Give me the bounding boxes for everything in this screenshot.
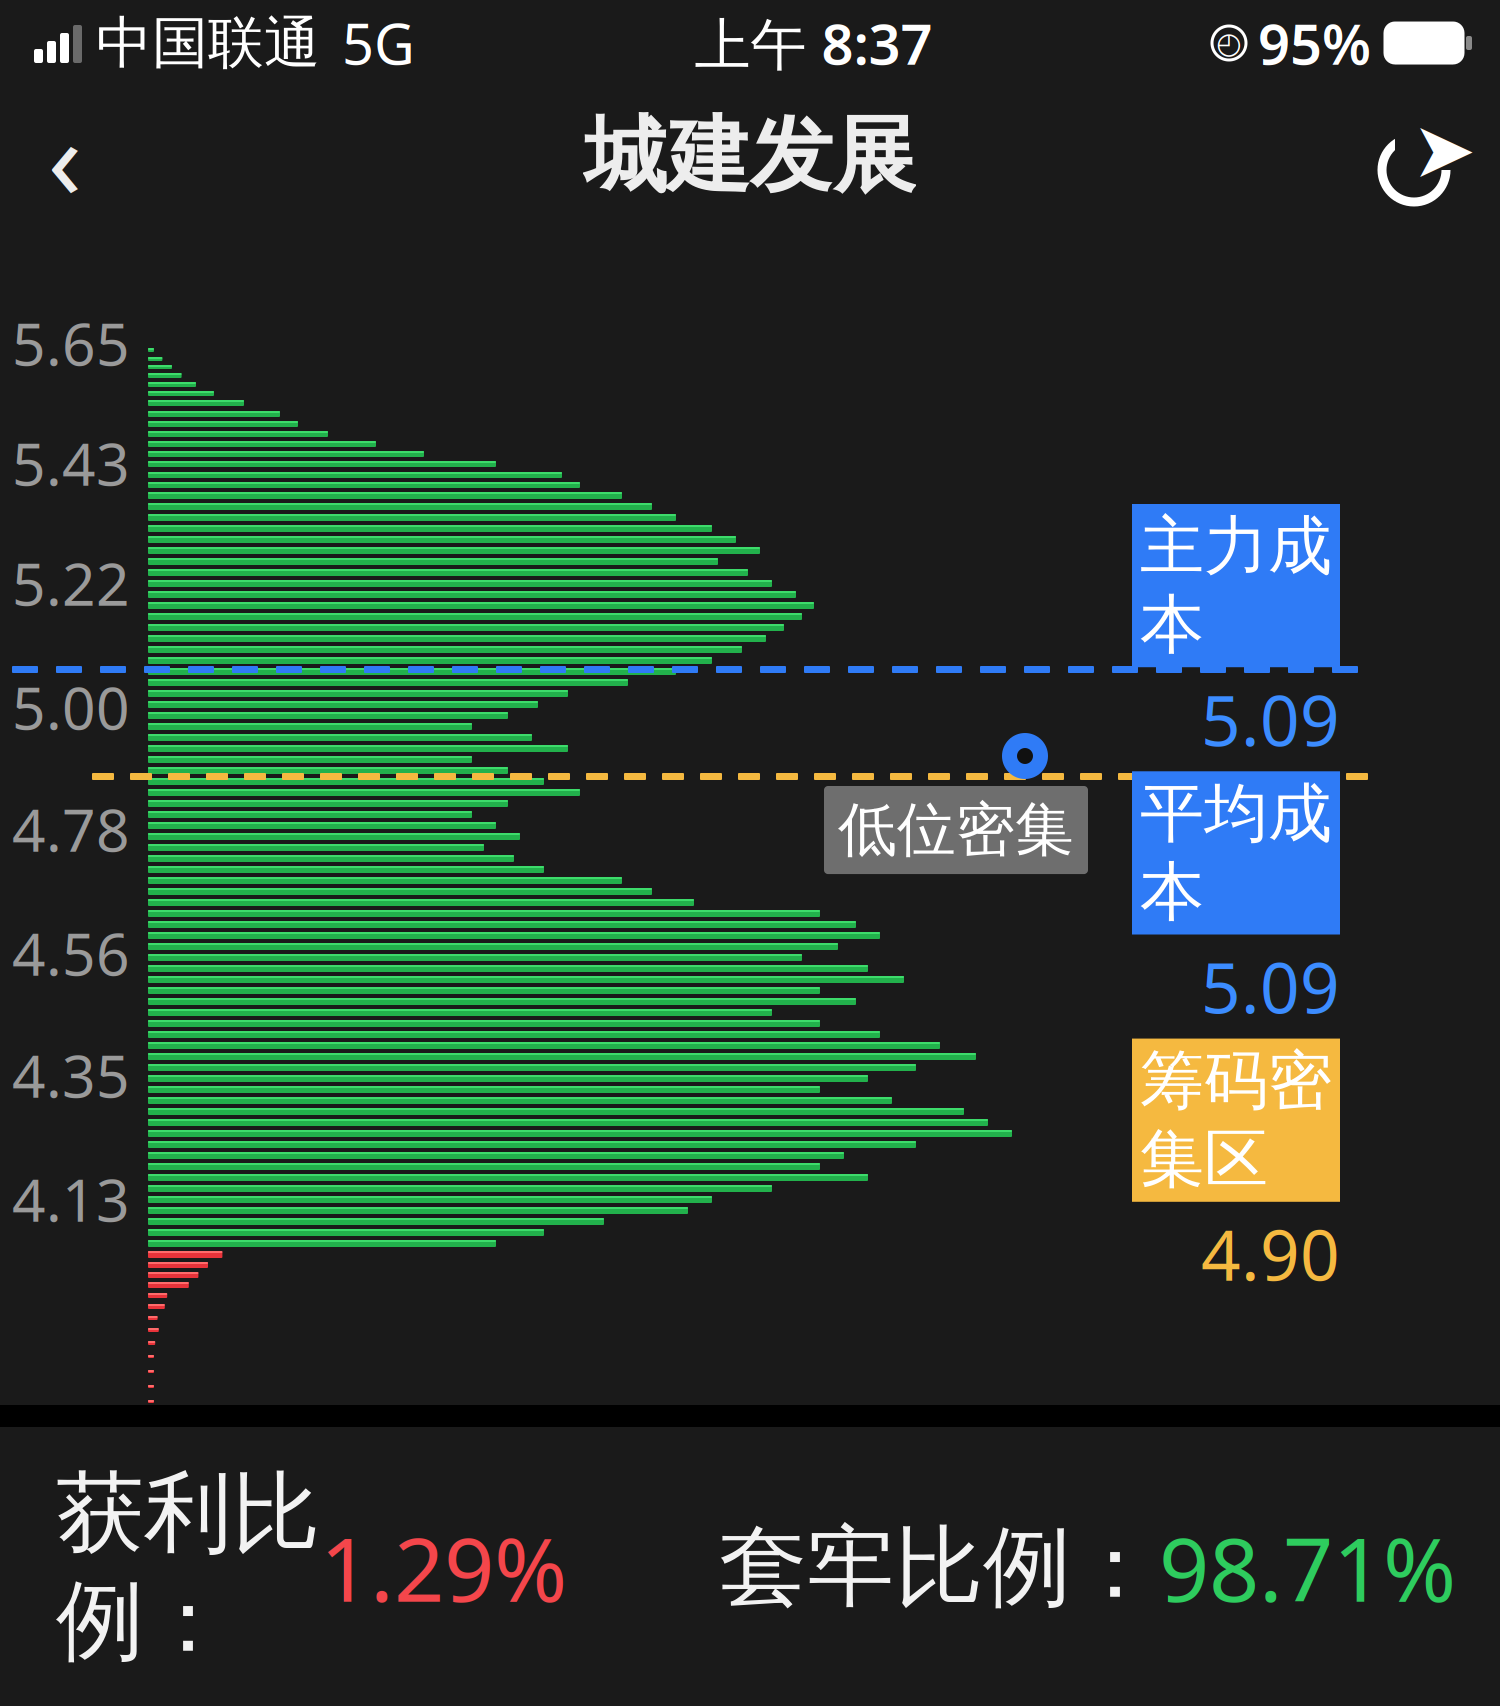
staticText: 5.22 xyxy=(12,544,130,622)
staticText: 95% xyxy=(1258,6,1371,80)
staticText: 4.78 xyxy=(12,790,130,868)
button[interactable]: 分享 xyxy=(1360,96,1500,216)
staticText: 4.35 xyxy=(12,1036,130,1114)
staticText: ◴ xyxy=(1216,26,1242,60)
staticText: 5.09 xyxy=(1201,940,1340,1033)
staticText: 平均成本 xyxy=(1140,774,1332,931)
staticText: 4.13 xyxy=(12,1160,130,1238)
staticText: 4.56 xyxy=(12,914,130,992)
button[interactable]: 返回 xyxy=(0,96,130,216)
staticText: 筹码密集区 xyxy=(1140,1042,1332,1199)
staticText: 98.71% xyxy=(1159,1509,1456,1626)
staticText: 5.09 xyxy=(1201,673,1340,765)
staticText: 5G xyxy=(342,6,415,80)
staticText: ‹ xyxy=(47,82,82,230)
staticText: 中国联通 xyxy=(96,9,320,77)
staticText: 5.00 xyxy=(12,668,130,746)
staticText: ➤ xyxy=(1411,106,1476,194)
staticText: 城建发展 xyxy=(584,105,916,207)
staticText: 主力成本 xyxy=(1140,507,1332,664)
staticText: 获利比例： xyxy=(56,1459,320,1676)
staticText: 套牢比例： xyxy=(719,1513,1159,1622)
staticText: 低位密集 xyxy=(838,794,1074,866)
staticText: 5.65 xyxy=(12,304,130,382)
staticText: 上午 8:37 xyxy=(694,6,932,80)
staticText: 5.43 xyxy=(12,424,130,502)
staticText: 4.90 xyxy=(1201,1208,1340,1300)
staticText: 1.29% xyxy=(320,1509,567,1626)
